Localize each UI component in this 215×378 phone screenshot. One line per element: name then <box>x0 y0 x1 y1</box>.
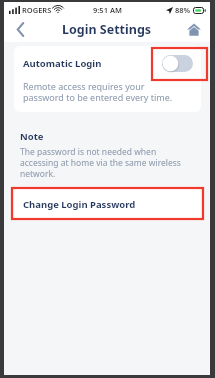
button[interactable]: Change Login Password <box>14 188 201 220</box>
staticText: Remote access requires your password to … <box>23 80 187 104</box>
button[interactable]: Automatic Login <box>14 46 201 80</box>
staticText: Change Login Password <box>23 198 136 211</box>
staticText: The password is not needed when accessin… <box>20 146 196 179</box>
button[interactable]: Home <box>182 17 206 42</box>
staticText: 88% <box>175 5 191 15</box>
staticText: Automatic Login <box>23 57 102 70</box>
staticText: Note <box>20 130 44 143</box>
staticText: ROGERS <box>22 5 52 15</box>
button[interactable]: Back <box>6 17 34 42</box>
staticText: Login Settings <box>62 21 152 38</box>
staticText: 9:51 AM <box>93 5 122 15</box>
button[interactable]: Automatic Login toggle, off <box>162 55 193 72</box>
